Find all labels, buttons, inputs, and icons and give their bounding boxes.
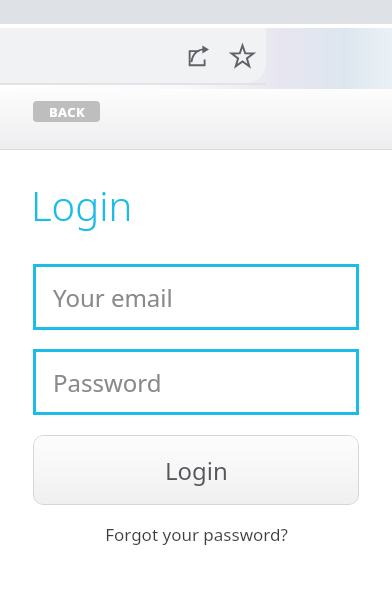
button[interactable]: Forgot your password? xyxy=(0,523,392,546)
staticText: BACK xyxy=(49,103,85,121)
button[interactable]: Share xyxy=(178,36,218,76)
staticText: Login xyxy=(165,454,228,487)
button[interactable]: Password xyxy=(33,349,359,415)
staticText: Your email xyxy=(53,281,173,314)
staticText: Forgot your password? xyxy=(105,523,288,546)
button[interactable]: Share xyxy=(0,28,266,83)
button[interactable]: Login xyxy=(33,435,359,505)
button[interactable]: BACK xyxy=(33,101,100,122)
staticText: Login xyxy=(31,178,133,232)
button[interactable]: Bookmark xyxy=(222,36,262,76)
button[interactable]: Your email xyxy=(33,264,359,330)
staticText: Password xyxy=(53,366,162,399)
